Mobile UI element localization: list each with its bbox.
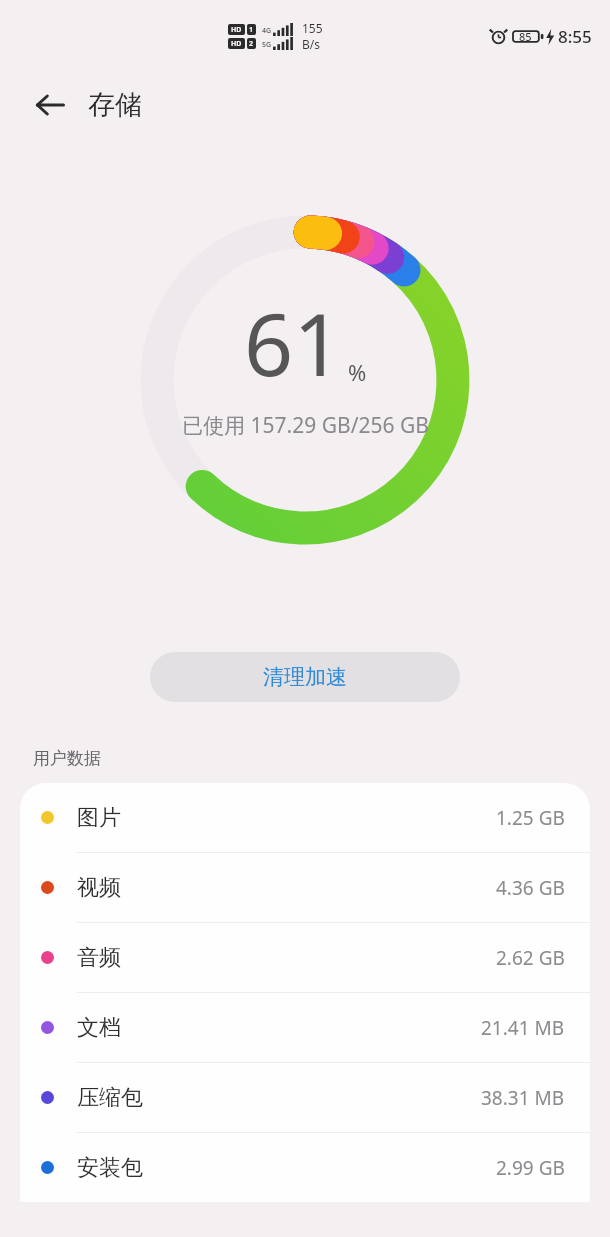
- staticText: 用户数据: [33, 748, 101, 769]
- staticText: 压缩包: [77, 1084, 143, 1112]
- button[interactable]: 清理加速: [150, 652, 460, 702]
- button[interactable]: 音频: [20, 923, 590, 992]
- staticText: 38.31 MB: [481, 1085, 565, 1111]
- staticText: 155: [302, 20, 323, 36]
- button[interactable]: Back: [26, 81, 74, 129]
- staticText: 1: [249, 25, 254, 35]
- button[interactable]: 视频: [20, 853, 590, 922]
- staticText: HD: [231, 39, 242, 49]
- staticText: 4.36 GB: [496, 875, 565, 901]
- button[interactable]: 文档: [20, 993, 590, 1062]
- staticText: %: [348, 357, 367, 387]
- button[interactable]: 安装包: [20, 1133, 590, 1202]
- staticText: B/s: [302, 36, 321, 52]
- button[interactable]: 压缩包: [20, 1063, 590, 1132]
- staticText: 85: [519, 29, 532, 44]
- staticText: 文档: [77, 1014, 121, 1042]
- staticText: 安装包: [77, 1154, 143, 1182]
- staticText: 存储: [88, 88, 142, 122]
- staticText: 音频: [77, 944, 121, 972]
- staticText: 2.62 GB: [496, 945, 565, 971]
- staticText: 清理加速: [263, 664, 347, 690]
- button[interactable]: 图片: [20, 783, 590, 852]
- staticText: HD: [231, 25, 242, 35]
- staticText: 21.41 MB: [481, 1015, 565, 1041]
- staticText: 61: [244, 284, 343, 401]
- staticText: 图片: [77, 804, 121, 832]
- staticText: 8:55: [558, 25, 592, 48]
- staticText: 4G: [262, 26, 272, 36]
- staticText: 视频: [77, 874, 121, 902]
- staticText: 1.25 GB: [496, 805, 565, 831]
- staticText: 5G: [262, 40, 272, 50]
- staticText: 2.99 GB: [496, 1155, 565, 1181]
- staticText: 2: [249, 39, 254, 49]
- staticText: 已使用 157.29 GB/256 GB: [182, 411, 429, 440]
